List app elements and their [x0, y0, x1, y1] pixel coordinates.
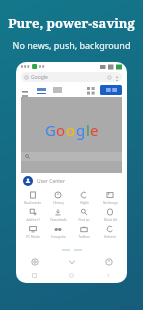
staticText: G	[45, 120, 56, 140]
staticText: Block Ad	[104, 218, 117, 222]
staticText: Pure, power-saving	[0, 14, 143, 32]
staticText: User Center	[37, 178, 65, 185]
button[interactable]: Downloads	[53, 255, 90, 269]
button[interactable]: All tab	[37, 87, 46, 94]
button[interactable]: Add to H	[20, 206, 45, 223]
staticText: Toolbox	[78, 235, 90, 239]
button[interactable]: Bookmarks	[20, 189, 45, 206]
button[interactable]: History	[45, 189, 71, 206]
staticText: No news, push, background	[0, 39, 143, 51]
button[interactable]: Downloads	[45, 206, 71, 223]
button[interactable]: No Image	[97, 189, 123, 206]
button[interactable]: Recents	[16, 269, 53, 281]
button[interactable]: Back	[90, 269, 127, 281]
button[interactable]: Home	[53, 269, 90, 281]
button[interactable]: Block Ad	[97, 206, 123, 223]
button[interactable]: Find on	[71, 206, 97, 223]
button[interactable]: Menu	[21, 86, 29, 94]
button[interactable]: Refresh	[97, 223, 123, 240]
staticText: Downloads	[50, 218, 67, 222]
staticText: Bookmarks	[24, 201, 41, 205]
staticText: History	[53, 201, 64, 205]
staticText: Google	[31, 74, 48, 81]
button[interactable]: Sign in	[100, 85, 122, 95]
staticText: e	[90, 120, 99, 140]
button[interactable]: Address bar	[21, 72, 122, 82]
button[interactable]: Tabs	[90, 255, 127, 269]
button[interactable]: PC Mode	[20, 223, 45, 240]
staticText: g	[76, 120, 86, 140]
staticText: o	[66, 120, 76, 140]
button[interactable]: Apps	[87, 87, 94, 94]
staticText: Incognito	[51, 235, 66, 239]
staticText: PC Mode	[26, 235, 40, 239]
button[interactable]: User Center	[23, 173, 120, 189]
staticText: Refresh	[104, 235, 116, 239]
button[interactable]: Incognito	[45, 223, 71, 240]
staticText: Night	[80, 201, 89, 205]
staticText: Find on	[78, 218, 90, 222]
staticText: Add to H	[26, 218, 40, 222]
staticText: o	[56, 120, 66, 140]
button[interactable]: Search box	[21, 152, 122, 161]
button[interactable]: Home	[16, 255, 53, 269]
staticText: No Image	[103, 201, 118, 205]
button[interactable]: Night	[71, 189, 97, 206]
button[interactable]: Toolbox	[71, 223, 97, 240]
staticText: l	[86, 120, 90, 140]
